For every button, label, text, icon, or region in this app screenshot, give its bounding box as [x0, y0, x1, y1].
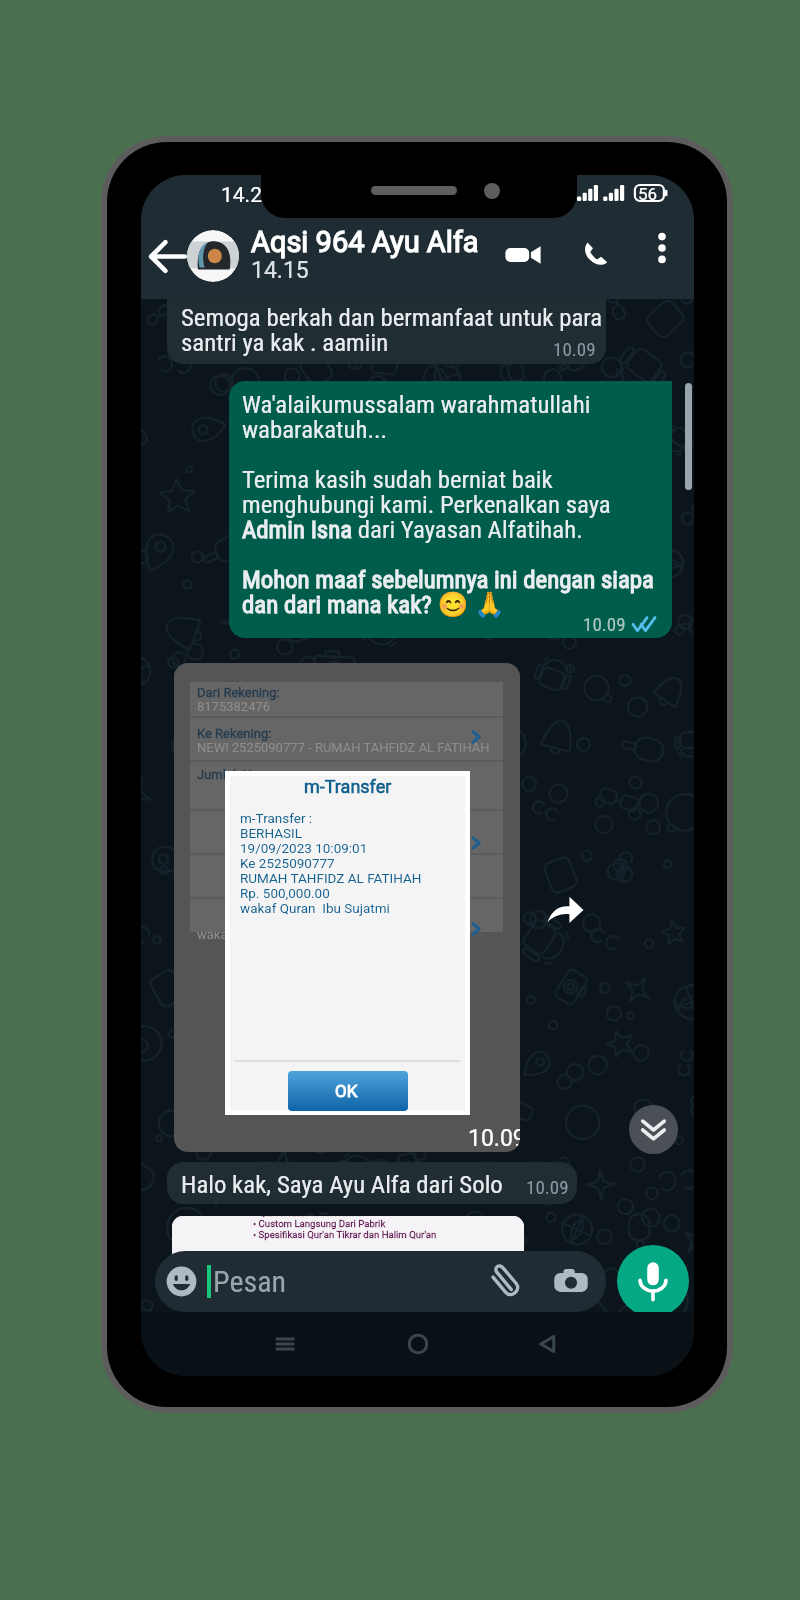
button[interactable]: • Qur'an Khusus Haramain • Custom Langsu…	[172, 1216, 524, 1256]
button[interactable]: Recent apps	[267, 1326, 303, 1362]
staticText: Dari Rekening:	[197, 685, 280, 700]
staticText: 14.15	[251, 257, 309, 284]
button[interactable]: Back	[142, 231, 193, 282]
staticText: Berita	[197, 913, 231, 928]
staticText: 14.20	[221, 183, 274, 208]
staticText: • Qur'an Khusus Haramain • Custom Langsu…	[253, 1216, 437, 1240]
button[interactable]: Scroll to bottom	[629, 1105, 678, 1154]
staticText: NEW! 2525090777 - RUMAH TAHFIDZ AL FATIH…	[197, 740, 490, 755]
button[interactable]: Attach	[486, 1263, 524, 1301]
staticText: Ke Rekening:	[197, 726, 272, 741]
staticText: Pesan	[213, 1264, 287, 1299]
button[interactable]: Camera	[552, 1263, 590, 1301]
staticText: m-Transfer	[304, 776, 392, 797]
staticText: 10.09	[553, 338, 596, 360]
button[interactable]: Back	[530, 1326, 566, 1362]
button[interactable]: Home	[400, 1326, 436, 1362]
button[interactable]: Dari Rekening:	[174, 663, 520, 1152]
staticText: 8175382476	[197, 699, 271, 714]
staticText: Wa'alaikumussalam warahmatullahi wabarak…	[242, 390, 654, 619]
staticText: 56	[638, 184, 658, 204]
staticText: Aqsi 964 Ayu Alfa	[251, 225, 479, 259]
button[interactable]: OK	[288, 1071, 408, 1111]
staticText: 10.09	[526, 1176, 569, 1198]
staticText: Jumlah Uang	[197, 767, 274, 782]
staticText: 10.09	[583, 613, 626, 635]
button[interactable]: Pesan	[155, 1251, 606, 1312]
button[interactable]: Contact photo	[187, 230, 239, 282]
button[interactable]: Record voice message	[617, 1245, 689, 1317]
staticText: OK	[335, 1081, 358, 1101]
staticText: 10.09	[468, 1125, 520, 1152]
button[interactable]: Semoga berkah dan bermanfaat untuk para …	[167, 287, 606, 364]
button[interactable]: Voice call	[578, 237, 612, 271]
button[interactable]: Forward	[543, 887, 587, 931]
button[interactable]: Halo kak, Saya Ayu Alfa dari Solo	[167, 1162, 577, 1204]
staticText: Halo kak, Saya Ayu Alfa dari Solo	[181, 1170, 503, 1199]
button[interactable]: Video call	[501, 233, 545, 277]
staticText: Semoga berkah dan bermanfaat untuk para …	[181, 303, 603, 357]
staticText: waka	[197, 927, 228, 942]
staticText: m-Transfer : BERHASIL 19/09/2023 10:09:0…	[240, 810, 422, 916]
button[interactable]: More options	[647, 233, 677, 263]
